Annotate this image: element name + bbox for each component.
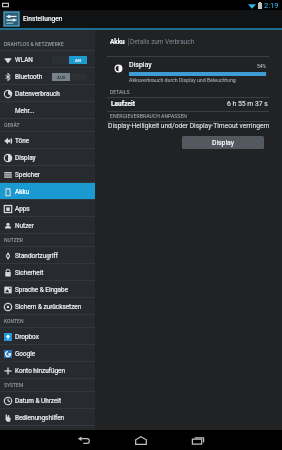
staticText: AN xyxy=(75,58,82,63)
staticText: SYSTEM xyxy=(4,382,24,388)
staticText: Display-Helligkeit und/oder Display-Time… xyxy=(108,122,270,130)
staticText: Akku xyxy=(15,188,30,196)
staticText: Sicherheit xyxy=(15,269,44,277)
button[interactable]: Bedienungshilfen xyxy=(0,409,95,426)
button[interactable]: Nutzer xyxy=(0,217,95,234)
staticText: Speicher xyxy=(15,171,40,179)
staticText: 2:19 xyxy=(264,1,279,10)
staticText: KONTEN xyxy=(4,318,24,324)
button[interactable]: Mehr... xyxy=(0,102,95,119)
button[interactable]: Home xyxy=(125,430,157,450)
button[interactable]: Konto hinzufügen xyxy=(0,362,95,379)
staticText: Einstellungen xyxy=(23,15,63,23)
staticText: Dropbox xyxy=(15,333,39,341)
staticText: Töne xyxy=(15,137,30,145)
button[interactable]: Standortzugriff xyxy=(0,247,95,264)
button[interactable]: Back xyxy=(68,430,100,450)
button[interactable]: Display xyxy=(182,136,264,149)
staticText: Display xyxy=(212,139,234,147)
button[interactable]: Display xyxy=(0,149,95,166)
staticText: Standortzugriff xyxy=(15,252,58,260)
staticText: Sichern & zurücksetzen xyxy=(15,303,82,311)
staticText: Laufzeit xyxy=(111,100,135,108)
button[interactable]: Entwickleroptionen xyxy=(0,426,95,443)
button[interactable]: Apps xyxy=(0,200,95,217)
button[interactable]: Datenverbrauch xyxy=(0,85,95,102)
button[interactable]: Dropbox xyxy=(0,328,95,345)
staticText: GERÄT xyxy=(4,122,20,128)
button[interactable]: Datum & Uhrzeit xyxy=(0,392,95,409)
staticText: Bluetooth xyxy=(15,73,43,81)
staticText: 54% xyxy=(257,63,267,69)
staticText: AUS xyxy=(57,75,66,80)
button[interactable]: Bluetooth xyxy=(0,68,95,85)
staticText: 6 h 55 m 37 s xyxy=(227,100,268,108)
staticText: Bedienungshilfen xyxy=(15,414,65,422)
staticText: Datenverbrauch xyxy=(15,90,60,98)
staticText: Google xyxy=(15,350,36,358)
button[interactable]: Google xyxy=(0,345,95,362)
button[interactable]: Töne xyxy=(0,132,95,149)
staticText: NUTZER xyxy=(4,237,23,243)
button[interactable]: Sprache & Eingabe xyxy=(0,281,95,298)
staticText: Akku xyxy=(110,38,125,46)
staticText: Details zum Verbrauch xyxy=(130,38,195,46)
button[interactable]: Akku xyxy=(110,38,125,46)
staticText: Nutzer xyxy=(15,222,34,230)
staticText: WLAN xyxy=(15,56,33,64)
staticText: Konto hinzufügen xyxy=(15,367,65,375)
staticText: Display xyxy=(129,61,152,69)
button[interactable]: Speicher xyxy=(0,166,95,183)
button[interactable]: Einstellungen xyxy=(0,10,282,28)
staticText: Display xyxy=(15,154,36,162)
staticText: Sprache & Eingabe xyxy=(15,286,69,294)
staticText: Mehr... xyxy=(15,107,35,115)
button[interactable]: Sicherheit xyxy=(0,264,95,281)
staticText: DRAHTLOS & NETZWERKE xyxy=(4,41,64,47)
staticText: DETAILS xyxy=(110,89,130,95)
button[interactable]: Recents xyxy=(182,430,214,450)
button[interactable]: Akku xyxy=(0,183,95,200)
staticText: Datum & Uhrzeit xyxy=(15,397,62,405)
button[interactable]: WLAN xyxy=(0,51,95,68)
staticText: ENERGIEVERBRAUCH ANPASSEN xyxy=(110,113,187,119)
staticText: Apps xyxy=(15,205,30,213)
staticText: Akkuverbrauch durch Display und Beleucht… xyxy=(129,77,236,83)
button[interactable]: Sichern & zurücksetzen xyxy=(0,298,95,315)
